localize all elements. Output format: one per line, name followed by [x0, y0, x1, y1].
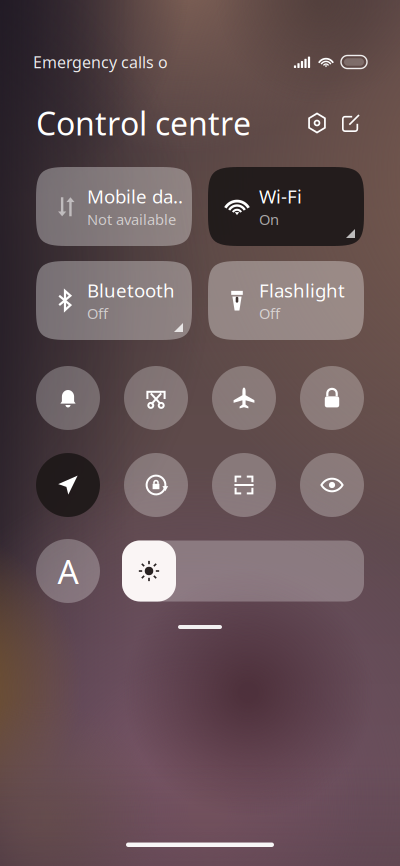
staticText: Bluetooth	[87, 278, 175, 303]
staticText: Off	[259, 304, 280, 323]
staticText: Off	[87, 304, 108, 323]
button[interactable]: Screen lock	[300, 366, 364, 430]
button[interactable]: Scan	[212, 453, 276, 517]
staticText: Wi-Fi	[259, 184, 302, 209]
button[interactable]: Settings	[294, 100, 340, 146]
button[interactable]: Bluetooth	[36, 261, 192, 340]
staticText: A	[57, 549, 78, 593]
button[interactable]: Reading mode	[300, 453, 364, 517]
button[interactable]: Brightness	[122, 540, 364, 601]
button[interactable]: Aeroplane mode	[212, 366, 276, 430]
button[interactable]: Silent mode	[36, 366, 100, 430]
button[interactable]: Auto brightness	[36, 539, 100, 603]
staticText: Mobile da..	[87, 184, 183, 209]
button[interactable]: Edit	[340, 100, 362, 146]
button[interactable]: Auto-rotate	[124, 453, 188, 517]
staticText: Control centre	[36, 102, 251, 144]
button[interactable]: Screenshot	[124, 366, 188, 430]
button[interactable]: Flashlight	[208, 261, 364, 340]
staticText: On	[259, 210, 279, 229]
button[interactable]: Mobile da..	[36, 167, 192, 246]
button[interactable]: Wi-Fi	[208, 167, 364, 246]
staticText: Flashlight	[259, 278, 345, 303]
staticText: Not available	[87, 210, 176, 229]
button[interactable]: Location	[36, 453, 100, 517]
staticText: Emergency calls o	[33, 51, 168, 73]
